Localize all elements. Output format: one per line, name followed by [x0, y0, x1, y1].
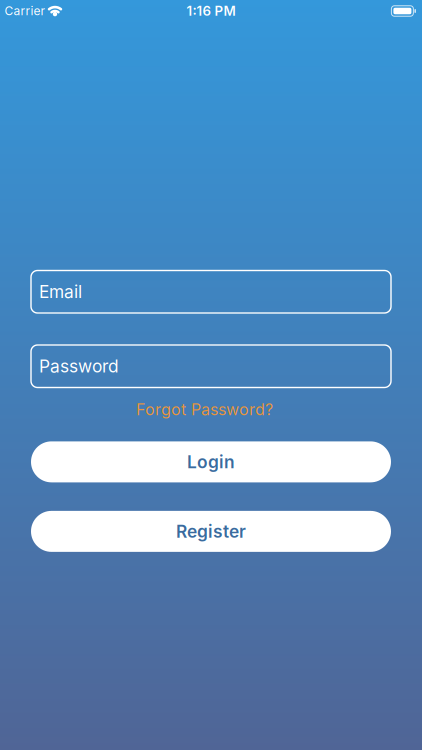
button[interactable]: Register	[31, 511, 391, 552]
button[interactable]: Forgot Password?	[142, 400, 279, 419]
staticText: 1:16 PM	[186, 3, 235, 19]
staticText: Carrier	[4, 4, 45, 18]
staticText: Login	[187, 452, 235, 472]
button[interactable]: Login	[31, 441, 391, 482]
staticText: Register	[176, 521, 246, 542]
staticText: Email	[39, 281, 82, 302]
staticText: Password	[39, 356, 119, 376]
staticText: Forgot Password?	[136, 400, 273, 419]
